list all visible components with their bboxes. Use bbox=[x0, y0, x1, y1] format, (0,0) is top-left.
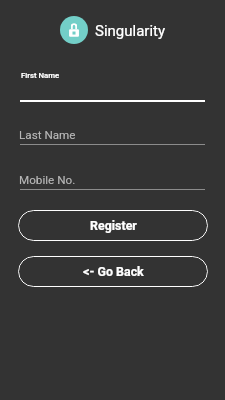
staticText: <- Go Back bbox=[83, 264, 144, 279]
button[interactable]: First Name bbox=[20, 66, 205, 102]
staticText: First Name bbox=[21, 71, 60, 80]
staticText: Register bbox=[90, 218, 137, 233]
staticText: Mobile No. bbox=[19, 173, 76, 187]
button[interactable]: Register bbox=[18, 210, 208, 241]
staticText: Last Name bbox=[19, 128, 76, 142]
other: Singularity logo bbox=[60, 16, 88, 44]
button[interactable]: Last Name bbox=[20, 123, 205, 145]
button[interactable]: <- Go Back bbox=[18, 256, 208, 287]
button[interactable]: Mobile No. bbox=[20, 168, 205, 191]
staticText: Singularity bbox=[95, 22, 166, 40]
